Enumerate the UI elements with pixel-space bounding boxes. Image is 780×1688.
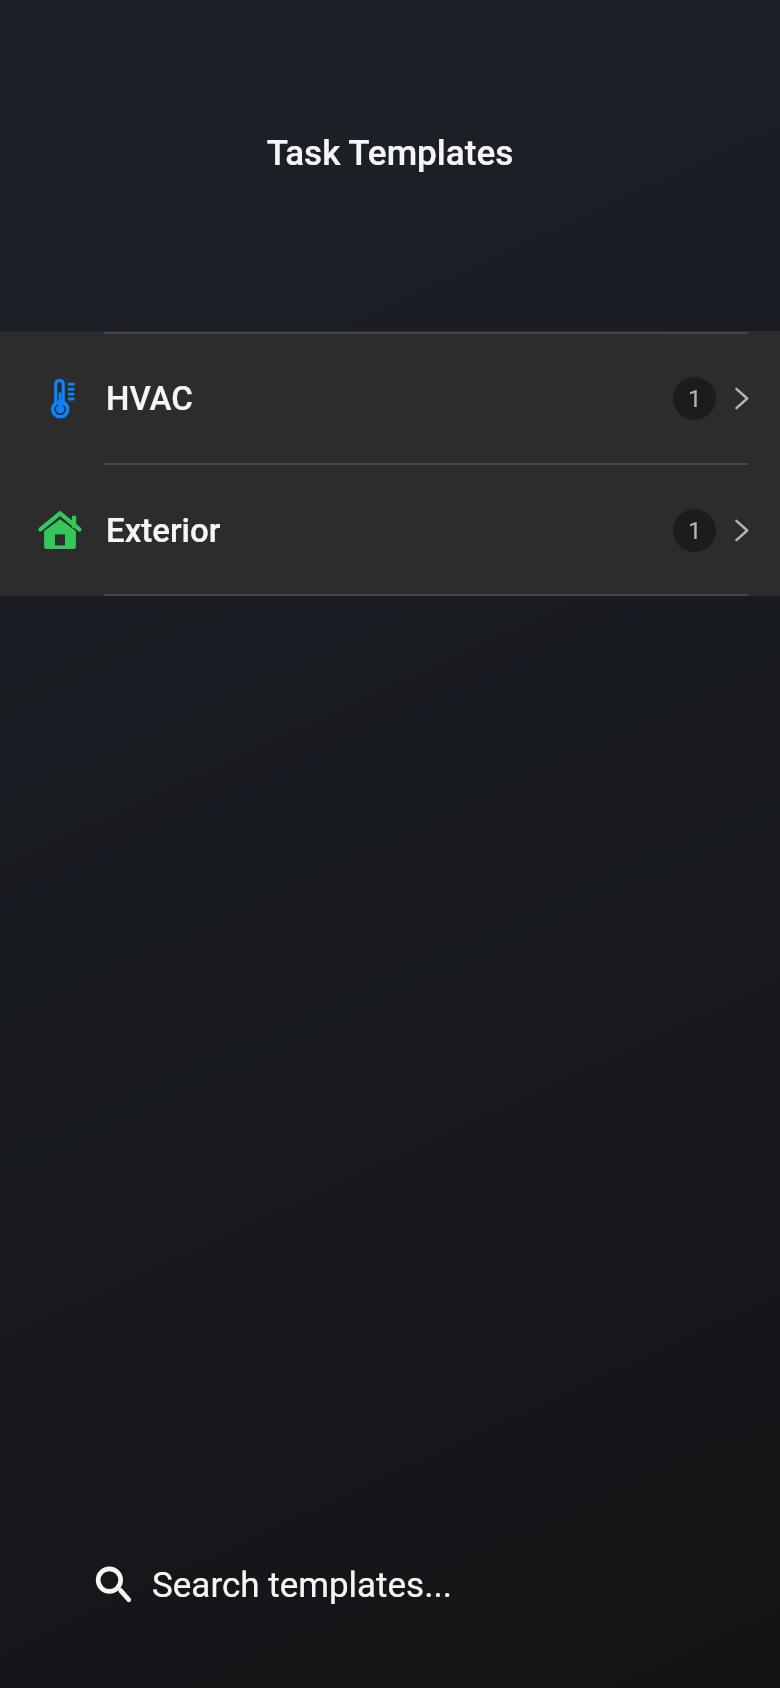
staticText: 1 xyxy=(688,385,702,413)
button[interactable]: Exterior xyxy=(0,463,780,595)
button[interactable]: HVAC xyxy=(0,331,780,463)
staticText: Task Templates xyxy=(0,133,780,174)
staticText: Exterior xyxy=(106,511,221,550)
staticText: Search templates... xyxy=(152,1565,452,1606)
staticText: 1 xyxy=(688,517,702,545)
staticText: HVAC xyxy=(106,379,193,418)
other: Search xyxy=(92,1562,132,1602)
button[interactable]: Search xyxy=(0,1556,780,1608)
